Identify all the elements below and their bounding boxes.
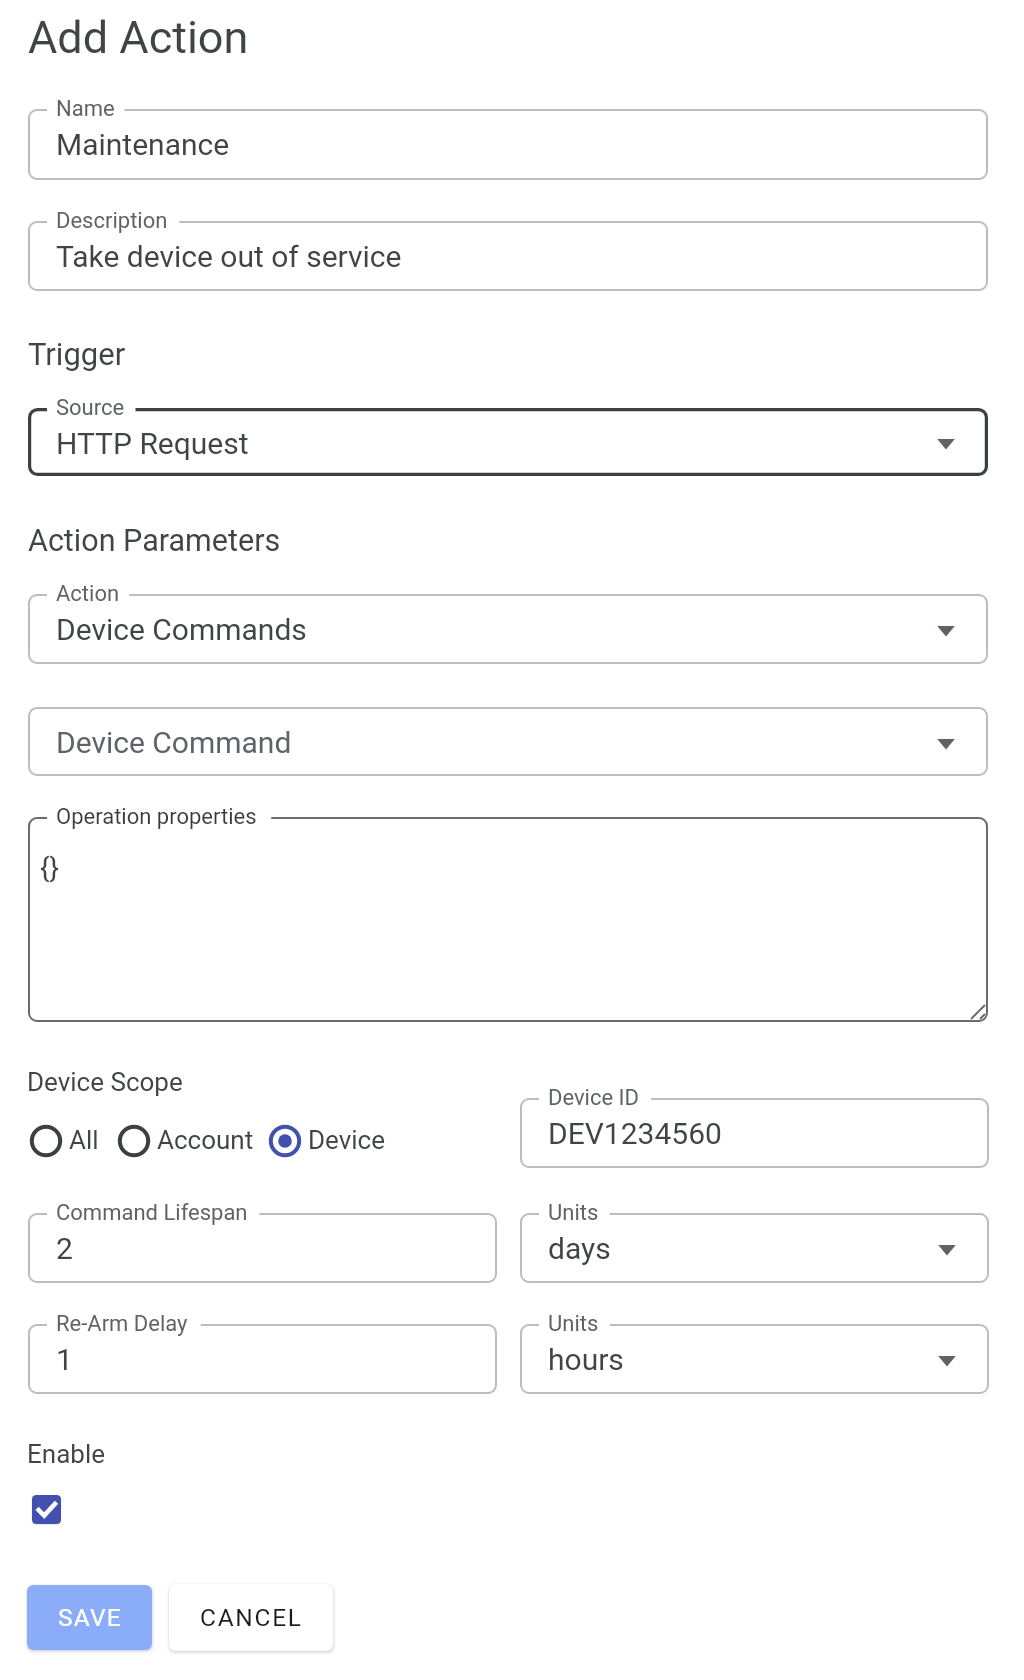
button[interactable]: Device Command — [28, 707, 988, 776]
staticText: Enable — [27, 1439, 105, 1469]
button[interactable]: Re-Arm Delay — [28, 1324, 497, 1394]
button[interactable]: SAVE — [27, 1585, 152, 1650]
button[interactable]: Units — [520, 1213, 989, 1283]
button[interactable]: Account — [116, 1122, 254, 1158]
staticText: {} — [40, 851, 59, 884]
staticText: Action — [56, 581, 120, 607]
button[interactable]: Open dropdown — [926, 609, 966, 649]
staticText: Source — [56, 395, 125, 421]
staticText: days — [548, 1231, 611, 1266]
button[interactable]: Open dropdown — [927, 1339, 967, 1379]
staticText: Command Lifespan — [56, 1200, 248, 1226]
staticText: Name — [56, 96, 115, 122]
button[interactable]: Device ID — [520, 1098, 989, 1168]
staticText: Device ID — [548, 1085, 640, 1111]
staticText: CANCEL — [200, 1603, 303, 1632]
staticText: 1 — [56, 1342, 73, 1377]
button[interactable]: Action — [28, 594, 988, 664]
staticText: Device — [308, 1125, 385, 1155]
button[interactable]: Open dropdown — [926, 422, 966, 462]
staticText: Operation properties — [56, 804, 257, 830]
staticText: Take device out of service — [56, 239, 402, 274]
staticText: Action Parameters — [28, 523, 281, 559]
staticText: Device Commands — [56, 612, 307, 647]
button[interactable]: Open dropdown — [926, 722, 966, 762]
staticText: DEV1234560 — [548, 1116, 722, 1151]
staticText: Add Action — [28, 11, 249, 64]
button[interactable]: CANCEL — [169, 1584, 333, 1651]
staticText: hours — [548, 1342, 624, 1377]
staticText: HTTP Request — [56, 426, 249, 461]
staticText: Re-Arm Delay — [56, 1311, 188, 1337]
staticText: Description — [56, 208, 168, 234]
staticText: Trigger — [28, 336, 126, 372]
button[interactable]: Description — [28, 221, 988, 291]
button[interactable]: Command Lifespan — [28, 1213, 497, 1283]
staticText: All — [69, 1125, 99, 1155]
button[interactable]: Source — [28, 408, 988, 476]
staticText: SAVE — [58, 1603, 122, 1632]
staticText: 2 — [56, 1231, 73, 1266]
button[interactable]: Operation properties — [28, 817, 988, 1022]
staticText: Device Command — [56, 725, 292, 760]
button[interactable]: Enable — [32, 1495, 61, 1524]
button[interactable]: Name — [28, 109, 988, 180]
button[interactable]: Units — [520, 1324, 989, 1394]
button[interactable]: Device — [267, 1122, 385, 1158]
button[interactable]: All — [28, 1122, 99, 1158]
staticText: Device Scope — [27, 1067, 183, 1097]
button[interactable]: Open dropdown — [927, 1228, 967, 1268]
staticText: Units — [548, 1200, 599, 1226]
staticText: Maintenance — [56, 127, 230, 162]
staticText: Account — [157, 1125, 254, 1155]
staticText: Units — [548, 1311, 599, 1337]
